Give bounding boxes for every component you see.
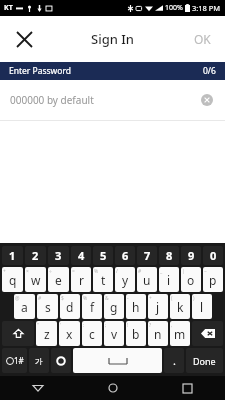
staticText: x xyxy=(66,326,73,342)
button[interactable]: Space xyxy=(73,348,162,373)
staticText: u xyxy=(143,272,151,288)
button[interactable]: b xyxy=(126,321,146,346)
button[interactable]: OK xyxy=(186,23,219,55)
staticText: 8 xyxy=(166,248,173,263)
button[interactable]: Shift xyxy=(2,321,34,346)
staticText: ' xyxy=(60,322,62,329)
staticText: ) xyxy=(193,295,195,302)
button[interactable]: . xyxy=(164,348,184,373)
staticText: KT xyxy=(4,3,13,13)
staticText: e xyxy=(55,272,62,288)
button[interactable]: l xyxy=(192,294,212,319)
button[interactable]: m xyxy=(170,321,190,346)
button[interactable]: g xyxy=(104,294,124,319)
staticText: 2 xyxy=(32,248,39,263)
button[interactable]: o xyxy=(181,267,201,292)
staticText: f xyxy=(90,299,95,315)
button[interactable]: j xyxy=(148,294,168,319)
staticText: Done xyxy=(193,355,216,367)
button[interactable]: x xyxy=(59,321,80,346)
button[interactable]: 6 xyxy=(115,246,135,265)
staticText: . xyxy=(173,353,176,368)
staticText: $ xyxy=(61,295,64,302)
staticText: m xyxy=(174,326,186,342)
staticText: t xyxy=(101,272,106,288)
staticText: 3:18 PM xyxy=(192,3,221,13)
staticText: h xyxy=(132,299,140,315)
button[interactable]: 7 xyxy=(137,246,157,265)
button[interactable]: d xyxy=(60,294,80,319)
button[interactable]: k xyxy=(170,294,190,319)
staticText: Enter Password xyxy=(9,65,72,77)
staticText: " xyxy=(37,322,40,329)
button[interactable]: a xyxy=(14,294,35,319)
staticText: n xyxy=(154,326,162,342)
button[interactable]: c xyxy=(82,321,102,346)
button[interactable]: v xyxy=(104,321,124,346)
staticText: 6 xyxy=(122,248,129,263)
button[interactable]: n xyxy=(148,321,168,346)
button[interactable]: t xyxy=(93,267,113,292)
button[interactable]: w xyxy=(25,267,46,292)
button[interactable]: Done xyxy=(186,348,223,373)
staticText: % xyxy=(83,295,88,302)
staticText: c xyxy=(89,326,95,342)
staticText: 0/6 xyxy=(203,65,216,77)
button[interactable]: 9 xyxy=(181,246,201,265)
button[interactable]: 2 xyxy=(25,246,46,265)
staticText: # xyxy=(138,268,142,275)
button[interactable]: Enter Password xyxy=(0,62,225,80)
button[interactable]: p xyxy=(203,267,223,292)
button[interactable]: s xyxy=(37,294,58,319)
button[interactable]: e xyxy=(48,267,69,292)
button[interactable]: 0 xyxy=(203,246,223,265)
staticText: _ xyxy=(160,268,163,275)
staticText: | xyxy=(182,268,185,275)
staticText: , xyxy=(171,322,173,329)
button[interactable]: 5 xyxy=(93,246,113,265)
staticText: / xyxy=(116,268,118,275)
staticText: ? xyxy=(149,322,152,329)
button[interactable]: Symbols xyxy=(2,348,27,373)
staticText: 9 xyxy=(188,248,195,263)
button[interactable]: q xyxy=(2,267,23,292)
staticText: 000000 by default xyxy=(10,93,94,107)
button[interactable]: h xyxy=(126,294,146,319)
staticText: d xyxy=(66,299,74,315)
staticText: 1# xyxy=(14,355,24,366)
staticText: j xyxy=(156,299,160,315)
button[interactable]: Keyboard settings xyxy=(51,348,71,373)
staticText: w xyxy=(31,272,41,288)
button[interactable]: Close xyxy=(6,21,42,57)
button[interactable]: Backspace xyxy=(192,321,223,346)
button[interactable]: 3 xyxy=(48,246,69,265)
button[interactable]: Recents xyxy=(150,376,225,400)
button[interactable]: 8 xyxy=(159,246,179,265)
button[interactable]: Change language xyxy=(29,348,49,373)
staticText: OK xyxy=(194,31,211,47)
button[interactable]: r xyxy=(71,267,91,292)
staticText: : xyxy=(83,322,85,329)
staticText: 4 xyxy=(78,248,85,263)
button[interactable]: Clear xyxy=(197,90,217,110)
staticText: a xyxy=(21,299,28,315)
button[interactable]: z xyxy=(36,321,57,346)
button[interactable]: y xyxy=(115,267,135,292)
button[interactable]: 1 xyxy=(2,246,23,265)
button[interactable]: Back xyxy=(0,376,75,400)
staticText: i xyxy=(167,272,171,288)
button[interactable]: u xyxy=(137,267,157,292)
staticText: k xyxy=(177,299,184,315)
staticText: q xyxy=(9,272,17,288)
staticText: ; xyxy=(105,322,107,329)
button[interactable]: Home xyxy=(75,376,150,400)
button[interactable]: 4 xyxy=(71,246,91,265)
button[interactable]: i xyxy=(159,267,179,292)
staticText: ! xyxy=(127,322,129,329)
staticText: o xyxy=(187,272,195,288)
staticText: = xyxy=(72,268,75,275)
button[interactable]: 000000 by default xyxy=(0,80,225,120)
button[interactable]: f xyxy=(82,294,102,319)
staticText: 7 xyxy=(144,248,151,263)
staticText: % xyxy=(94,268,99,275)
